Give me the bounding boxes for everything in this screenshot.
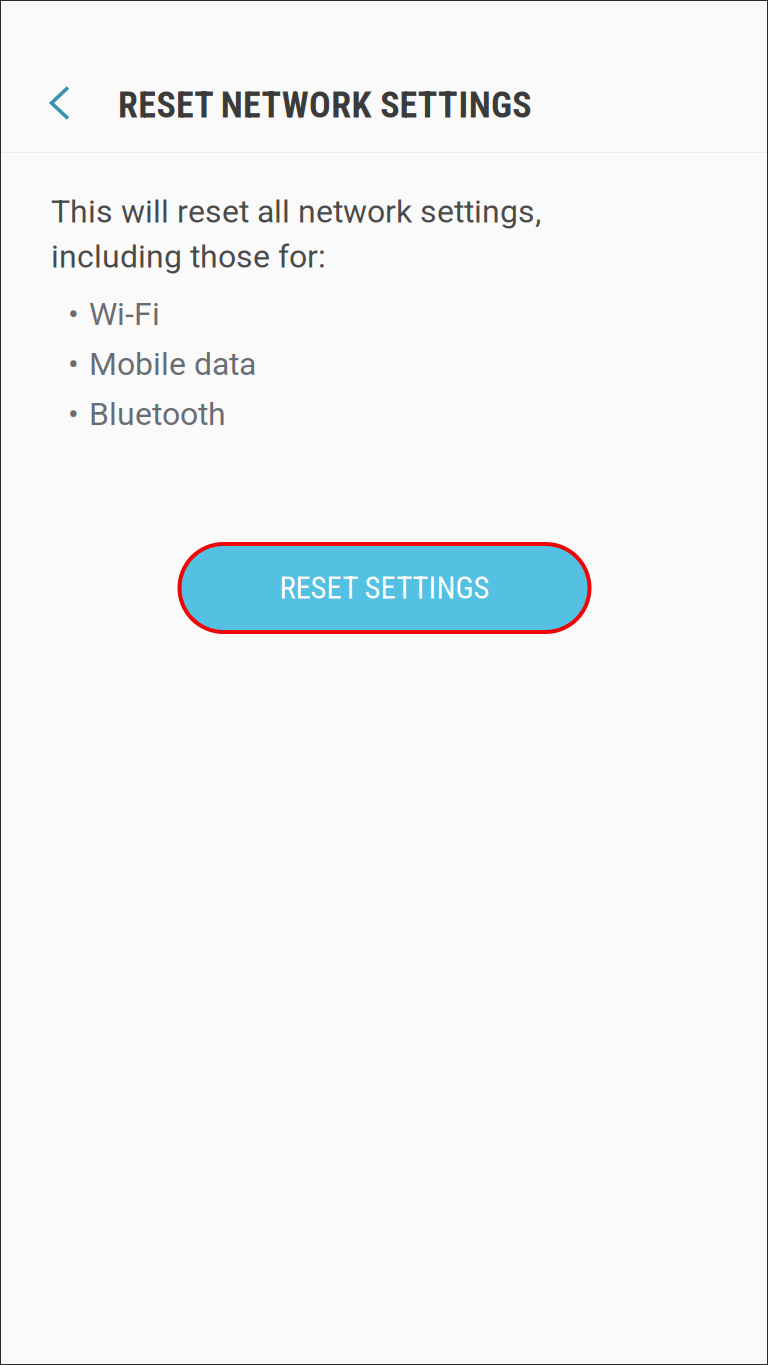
- button[interactable]: RESET SETTINGS: [179, 544, 589, 632]
- staticText: Wi-Fi: [89, 295, 160, 333]
- staticText: RESET NETWORK SETTINGS: [118, 84, 531, 126]
- staticText: including those for:: [51, 238, 326, 275]
- staticText: •: [68, 295, 79, 333]
- staticText: •: [68, 395, 79, 433]
- staticText: RESET SETTINGS: [279, 570, 489, 606]
- staticText: Bluetooth: [89, 395, 226, 433]
- button[interactable]: Back: [32, 75, 88, 131]
- staticText: This will reset all network settings,: [51, 193, 541, 230]
- staticText: Mobile data: [89, 345, 256, 383]
- staticText: •: [68, 345, 79, 383]
